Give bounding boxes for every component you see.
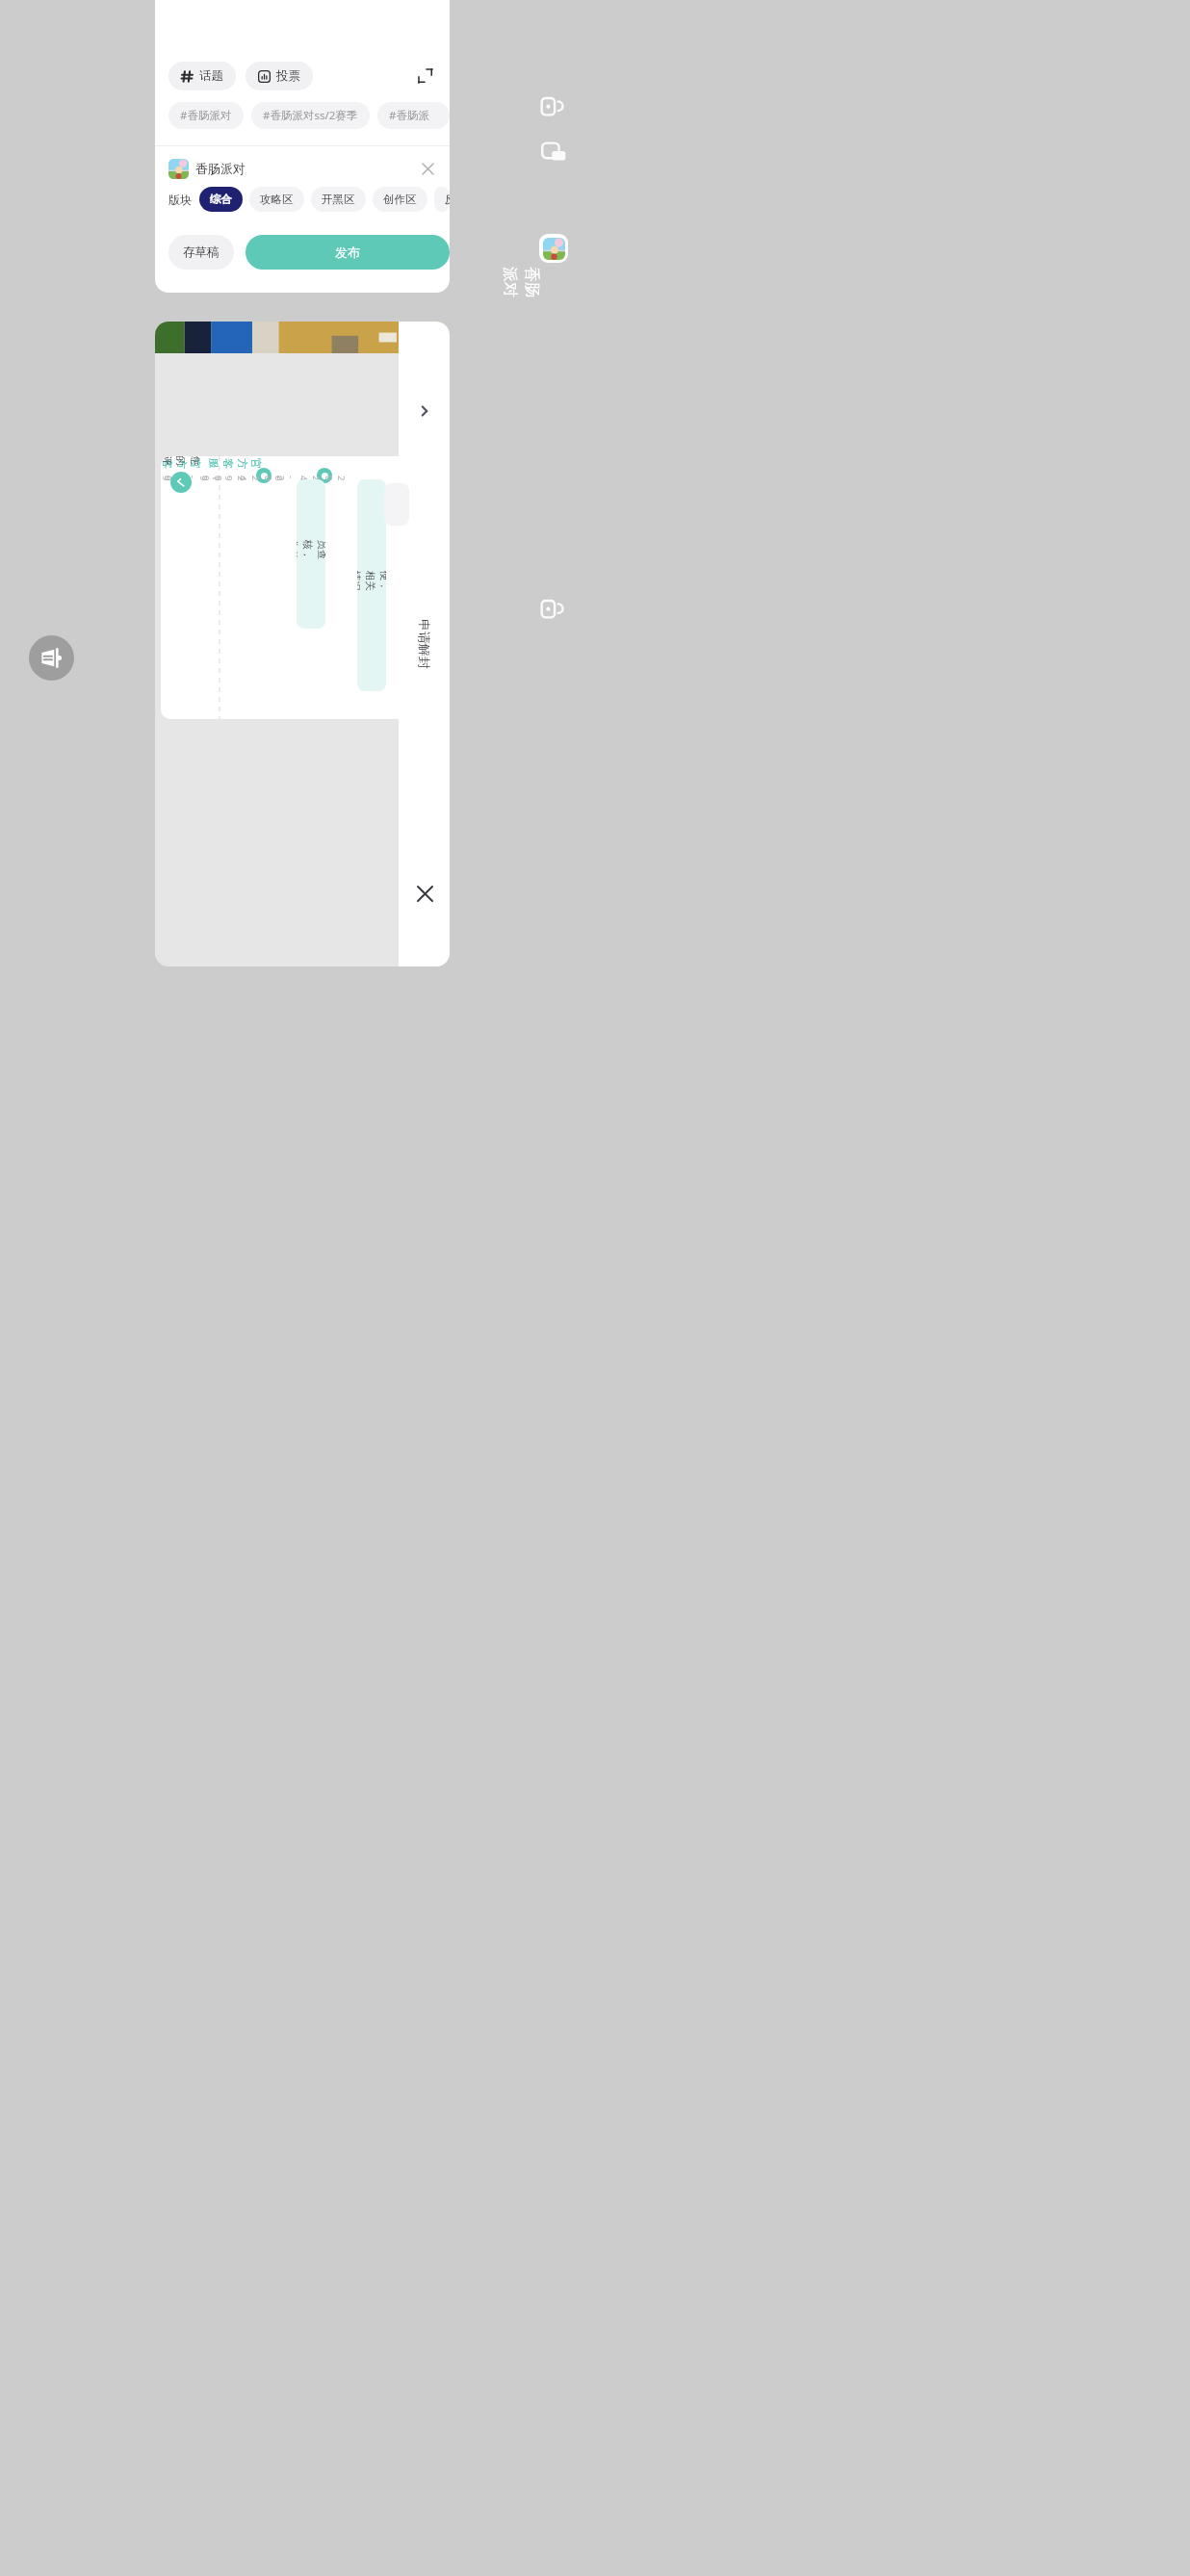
- button[interactable]: Close: [417, 158, 438, 179]
- staticText: #香肠派对六六胞: [389, 108, 438, 123]
- staticText: 香肠派对: [195, 161, 246, 176]
- button[interactable]: #香肠派对ss/2赛季: [251, 102, 370, 129]
- button[interactable]: Split screen: [29, 635, 74, 681]
- button[interactable]: #香肠派对六六胞: [377, 102, 450, 129]
- staticText: 投票: [276, 68, 300, 84]
- staticText: 您好，很抱歉给您带来不便，相关情况技术人员正在尽快核实处理中，还请您耐心等待下~: [357, 571, 386, 600]
- button[interactable]: 香肠派对 app: [539, 234, 568, 263]
- staticText: 话题: [199, 68, 223, 84]
- button[interactable]: 版块: [168, 193, 192, 207]
- button[interactable]: Open in app window: [535, 591, 572, 628]
- button[interactable]: 存草稿: [168, 235, 234, 270]
- staticText: 发布: [335, 245, 360, 260]
- staticText: 您的评价已收到，感谢您的反馈!: [161, 456, 201, 475]
- button[interactable]: 话题: [168, 62, 236, 90]
- staticText: 创作区: [383, 193, 417, 206]
- staticText: 香肠派对: [501, 267, 541, 309]
- button[interactable]: 开黑区: [311, 187, 366, 212]
- button[interactable]: 投票: [246, 62, 313, 90]
- button[interactable]: Close: [409, 878, 440, 909]
- staticText: 申请解封: [417, 619, 432, 669]
- staticText: 官方客服: [161, 458, 202, 476]
- button[interactable]: Collapse: [410, 397, 439, 425]
- button[interactable]: #香肠派对: [168, 102, 244, 129]
- staticText: 开黑区: [322, 193, 355, 206]
- button[interactable]: 综合: [199, 187, 243, 212]
- staticText: #香肠派对: [180, 108, 232, 123]
- button[interactable]: 反馈区: [434, 187, 450, 212]
- button[interactable]: 攻略区: [249, 187, 304, 212]
- button[interactable]: Open in app window: [535, 89, 572, 125]
- staticText: 您好，经技术人员查核，您的角色在游戏内有违规行为，不予解封。: [297, 540, 325, 568]
- button[interactable]: 创作区: [373, 187, 427, 212]
- button[interactable]: Picture in picture: [535, 133, 572, 169]
- button[interactable]: Expand: [413, 64, 438, 89]
- button[interactable]: 发布: [246, 235, 450, 270]
- staticText: 攻略区: [260, 193, 294, 206]
- staticText: 存草稿: [183, 245, 220, 260]
- staticText: #香肠派对ss/2赛季: [263, 108, 358, 123]
- staticText: 综合: [210, 193, 232, 206]
- staticText: 官方客服: [207, 458, 263, 476]
